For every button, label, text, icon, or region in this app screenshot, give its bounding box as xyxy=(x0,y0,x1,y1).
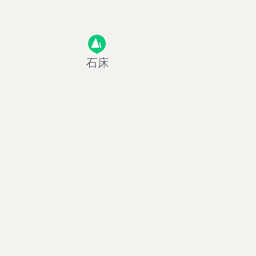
button[interactable]: 石床 xyxy=(80,30,116,70)
staticText: 石床 xyxy=(86,56,109,70)
